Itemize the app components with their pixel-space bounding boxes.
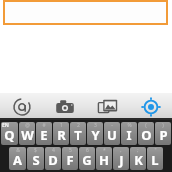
staticText: 5 (69, 147, 72, 154)
button[interactable]: & (9, 147, 26, 170)
button[interactable]: 6 (79, 147, 95, 170)
staticText: & (16, 147, 20, 154)
staticText: E (40, 126, 48, 144)
button[interactable]: # (36, 122, 52, 145)
button[interactable]: EN (1, 122, 18, 145)
staticText: $ (34, 147, 37, 154)
staticText: R (57, 126, 66, 144)
button[interactable]: Camera (43, 93, 86, 120)
staticText: K (134, 151, 143, 169)
staticText: W (21, 126, 34, 144)
button[interactable] (3, 0, 168, 25)
staticText: 2 (77, 122, 80, 129)
staticText: Y (91, 126, 100, 144)
button[interactable]: * (96, 147, 112, 170)
staticText: T (74, 126, 82, 144)
staticText: 6 (86, 147, 89, 154)
staticText: P (159, 126, 168, 144)
staticText: ; (137, 147, 139, 154)
staticText: EN (2, 122, 9, 129)
button[interactable]: % (121, 122, 137, 145)
staticText: S (32, 151, 40, 169)
staticText: % (127, 122, 132, 129)
button[interactable]: 2 (70, 122, 86, 145)
staticText: J (119, 151, 124, 169)
staticText: I (126, 126, 132, 144)
button[interactable]: Mention (0, 93, 43, 120)
staticText: * (103, 147, 106, 154)
staticText: O (141, 126, 152, 144)
button[interactable]: ) (155, 122, 171, 145)
staticText: ( (145, 122, 147, 129)
staticText: , (120, 147, 122, 154)
button[interactable]: 1 (53, 122, 69, 145)
staticText: 3 (94, 122, 97, 129)
button[interactable]: Location (129, 93, 172, 120)
staticText: L (151, 151, 159, 169)
button[interactable]: 5 (62, 147, 78, 170)
staticText: # (42, 122, 46, 129)
button[interactable]: $ (27, 147, 44, 170)
staticText: H (99, 151, 109, 169)
button[interactable]: ; (130, 147, 146, 170)
staticText: @ (25, 122, 30, 129)
staticText: " (154, 147, 157, 154)
staticText: D (48, 151, 58, 169)
button[interactable]: , (113, 147, 129, 170)
staticText: A (13, 151, 22, 169)
staticText: 4 (52, 147, 55, 154)
button[interactable]: - (104, 122, 120, 145)
staticText: ) (162, 122, 164, 129)
button[interactable]: @ (19, 122, 35, 145)
staticText: F (66, 151, 74, 169)
button[interactable]: ( (138, 122, 154, 145)
staticText: U (107, 126, 117, 144)
staticText: Q (4, 126, 15, 144)
staticText: - (111, 122, 113, 129)
button[interactable]: " (147, 147, 163, 170)
button[interactable]: 4 (45, 147, 61, 170)
button[interactable]: 3 (87, 122, 103, 145)
button[interactable]: Gallery (86, 93, 129, 120)
staticText: 1 (60, 122, 63, 129)
staticText: G (82, 151, 92, 169)
